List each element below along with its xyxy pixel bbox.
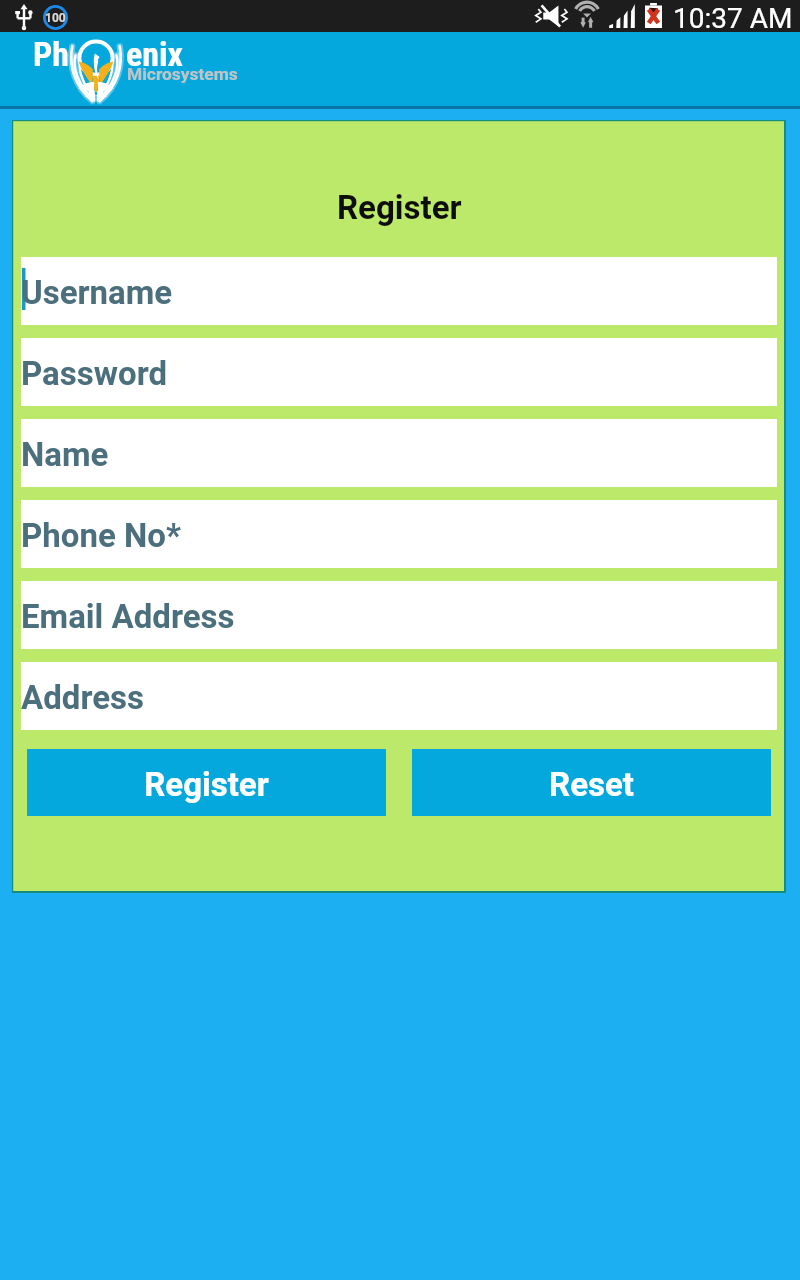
staticText: Register	[337, 188, 462, 227]
button[interactable]: Name	[21, 419, 777, 487]
staticText: Microsystems	[127, 64, 238, 84]
staticText: Email Address	[21, 597, 235, 636]
staticText: Name	[21, 435, 109, 474]
staticText: Address	[21, 678, 144, 717]
staticText: 10:37 AM	[673, 2, 793, 34]
staticText: Register	[144, 765, 269, 804]
button[interactable]: Email Address	[21, 581, 777, 649]
staticText: Phone No*	[21, 516, 181, 555]
button[interactable]: Phone No*	[21, 500, 777, 568]
button[interactable]: Password	[21, 338, 777, 406]
staticText: Password	[21, 354, 168, 393]
staticText: 100	[45, 11, 66, 25]
button[interactable]: Register	[27, 749, 386, 816]
button[interactable]: Reset	[412, 749, 771, 816]
staticText: Reset	[549, 765, 634, 804]
button[interactable]: Username	[21, 257, 777, 325]
button[interactable]: Address	[21, 662, 777, 730]
staticText: Ph	[33, 34, 70, 74]
staticText: enix	[126, 34, 183, 74]
staticText: Username	[21, 273, 173, 312]
